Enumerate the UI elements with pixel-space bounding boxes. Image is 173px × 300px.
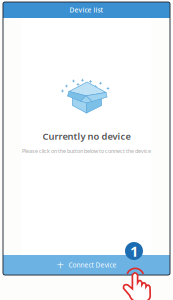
staticText: +: [56, 256, 64, 274]
staticText: Device list: [69, 6, 103, 14]
staticText: Connect Device: [68, 261, 116, 269]
staticText: Please click on the button below to conn…: [22, 147, 151, 154]
staticText: 1: [130, 241, 138, 261]
staticText: Currently no device: [42, 130, 130, 142]
button[interactable]: +: [3, 255, 170, 275]
